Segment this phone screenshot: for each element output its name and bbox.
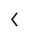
- button[interactable]: Back: [0, 0, 38, 38]
